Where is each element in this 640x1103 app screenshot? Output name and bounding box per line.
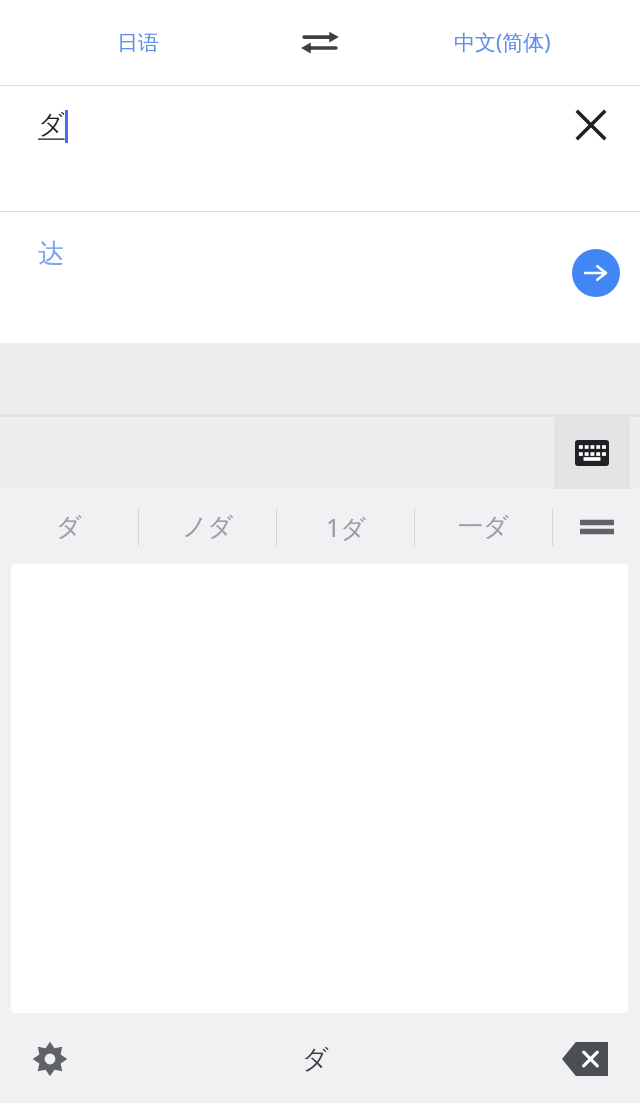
- button[interactable]: 一ダ: [415, 489, 552, 564]
- button[interactable]: 中文(简体): [365, 0, 640, 85]
- button[interactable]: More candidates: [553, 489, 640, 564]
- staticText: ダ: [38, 108, 65, 141]
- button[interactable]: Swap languages: [275, 0, 365, 85]
- button[interactable]: Translate: [572, 249, 620, 297]
- button[interactable]: Clear text: [560, 94, 622, 156]
- staticText: ノダ: [182, 511, 234, 542]
- button[interactable]: Backspace: [530, 1015, 640, 1103]
- staticText: 一ダ: [458, 511, 509, 542]
- staticText: 1ダ: [326, 510, 366, 544]
- button[interactable]: Settings: [0, 1015, 100, 1103]
- button[interactable]: Switch keyboard: [554, 417, 630, 489]
- button[interactable]: ノダ: [139, 489, 276, 564]
- button[interactable]: 1ダ: [277, 489, 414, 564]
- staticText: 达: [38, 237, 64, 270]
- staticText: ダ: [302, 1043, 329, 1076]
- button[interactable]: ダ: [0, 489, 138, 564]
- button[interactable]: 日语: [0, 0, 275, 85]
- button[interactable]: ダ: [100, 1015, 530, 1103]
- staticText: ダ: [56, 511, 82, 542]
- staticText: 日语: [117, 30, 159, 56]
- staticText: 中文(简体): [454, 28, 551, 57]
